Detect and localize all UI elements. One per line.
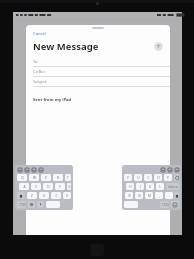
staticText: M	[148, 194, 151, 198]
staticText: return	[168, 185, 178, 189]
button[interactable]: Z	[27, 192, 37, 199]
button[interactable]: L	[156, 183, 164, 190]
staticText: R	[57, 176, 59, 180]
staticText: .	[169, 194, 170, 198]
button[interactable]: Format	[38, 167, 43, 172]
button[interactable]: Document	[160, 167, 165, 172]
button[interactable]: P	[164, 174, 172, 181]
button[interactable]	[174, 174, 179, 181]
button[interactable]: .?123	[17, 201, 26, 208]
staticText: .?123	[161, 203, 169, 207]
button[interactable]: Cc/Bcc:	[26, 67, 170, 77]
button[interactable]: Q	[17, 174, 27, 181]
button[interactable]: Y	[124, 174, 132, 181]
button[interactable]: C	[51, 192, 61, 199]
staticText: V	[66, 194, 68, 198]
button[interactable]: J	[136, 183, 144, 190]
button[interactable]: To:	[26, 57, 170, 67]
staticText: ,	[159, 194, 160, 198]
staticText: U	[137, 176, 140, 180]
button[interactable]: V	[63, 192, 71, 199]
staticText: K	[149, 185, 151, 189]
button[interactable]: Markup	[167, 167, 172, 172]
button[interactable]: G	[67, 183, 71, 190]
button[interactable]: return	[166, 183, 179, 190]
button[interactable]: Send	[154, 42, 163, 51]
staticText: T	[67, 176, 69, 180]
button[interactable]: N	[135, 192, 143, 199]
button[interactable]: K	[146, 183, 154, 190]
button[interactable]: .	[165, 192, 173, 199]
button[interactable]: I	[144, 174, 152, 181]
staticText: X	[43, 194, 45, 198]
button[interactable]: A	[19, 183, 29, 190]
staticText: .?123	[18, 203, 26, 207]
button[interactable]: Paste	[24, 167, 29, 172]
button[interactable]	[17, 192, 25, 199]
staticText: L	[159, 185, 161, 189]
staticText: F	[59, 185, 61, 189]
button[interactable]	[37, 201, 44, 208]
button[interactable]: T	[65, 174, 71, 181]
button[interactable]: ,	[155, 192, 163, 199]
button[interactable]: X	[39, 192, 49, 199]
staticText: W	[33, 176, 36, 180]
button[interactable]: U	[134, 174, 142, 181]
staticText: Cc/Bcc:	[33, 69, 46, 74]
button[interactable]: Sent from my iPad	[26, 97, 170, 103]
staticText: G	[68, 185, 71, 189]
staticText: O	[157, 176, 160, 180]
button[interactable]: Attach	[31, 167, 36, 172]
button[interactable]	[46, 201, 60, 208]
staticText: Sent from my iPad	[33, 97, 72, 103]
button[interactable]: B	[125, 192, 133, 199]
button[interactable]	[175, 192, 179, 199]
button[interactable]: R	[53, 174, 63, 181]
button[interactable]: E	[41, 174, 51, 181]
staticText: I	[147, 176, 149, 180]
staticText: P	[167, 176, 169, 180]
button[interactable]	[28, 201, 35, 208]
button[interactable]: H	[126, 183, 134, 190]
staticText: A	[23, 185, 26, 189]
staticText: Z	[31, 194, 33, 198]
staticText: Y	[127, 176, 129, 180]
button[interactable]: Camera	[174, 167, 179, 172]
staticText: D	[47, 185, 50, 189]
button[interactable]: M	[145, 192, 153, 199]
button[interactable]: F	[55, 183, 65, 190]
staticText: E	[45, 176, 47, 180]
button[interactable]: Undo	[17, 167, 22, 172]
button[interactable]: O	[154, 174, 162, 181]
button[interactable]: D	[43, 183, 53, 190]
staticText: To:	[33, 59, 39, 64]
button[interactable]: Cancel	[26, 30, 53, 38]
staticText: C	[55, 194, 58, 198]
button[interactable]: Subject:	[26, 77, 170, 87]
staticText: Subject:	[33, 79, 48, 84]
staticText: S	[35, 185, 37, 189]
button[interactable]	[124, 201, 138, 208]
button[interactable]: W	[29, 174, 39, 181]
staticText: H	[129, 185, 132, 189]
staticText: New Message	[33, 40, 99, 53]
button[interactable]: .?123	[160, 201, 169, 208]
staticText: N	[138, 194, 141, 198]
staticText: B	[128, 194, 131, 198]
button[interactable]	[171, 201, 179, 208]
button[interactable]: S	[31, 183, 41, 190]
staticText: Q	[21, 176, 24, 180]
staticText: J	[140, 185, 141, 189]
staticText: Cancel	[33, 31, 47, 37]
